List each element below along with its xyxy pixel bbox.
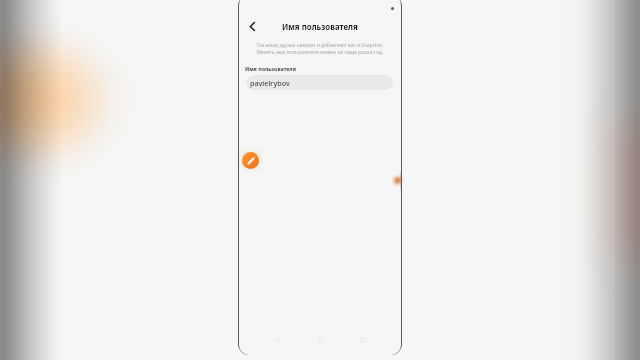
button[interactable]: pavielrybov bbox=[246, 75, 393, 90]
staticText: pavielrybov bbox=[250, 78, 290, 88]
staticText: Имя пользователя bbox=[245, 65, 296, 72]
button[interactable]: Back bbox=[245, 19, 259, 33]
button[interactable]: Back bbox=[274, 337, 281, 344]
button[interactable]: Home bbox=[317, 337, 324, 344]
staticText: Так ваши друзья находят и добавляют вас … bbox=[247, 42, 393, 56]
button[interactable]: Edit bbox=[242, 152, 259, 169]
button[interactable]: Recents bbox=[359, 337, 366, 344]
staticText: Имя пользователя bbox=[282, 22, 358, 33]
